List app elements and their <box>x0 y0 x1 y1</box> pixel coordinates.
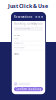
staticText: Email address <box>14 42 24 44</box>
staticText: Phone number <box>14 47 25 49</box>
staticText: Confirm booking <box>15 87 41 91</box>
staticText: Booking summary <box>14 22 37 25</box>
staticText: TOTAL <box>14 53 19 55</box>
button[interactable]: Confirm booking <box>14 87 43 91</box>
staticText: Name <box>14 38 18 40</box>
staticText: Reservations <box>14 15 32 19</box>
staticText: DETAILS <box>14 34 20 36</box>
staticText: Just Click & Use <box>8 2 48 10</box>
staticText: Choose a date and time <box>15 28 30 30</box>
